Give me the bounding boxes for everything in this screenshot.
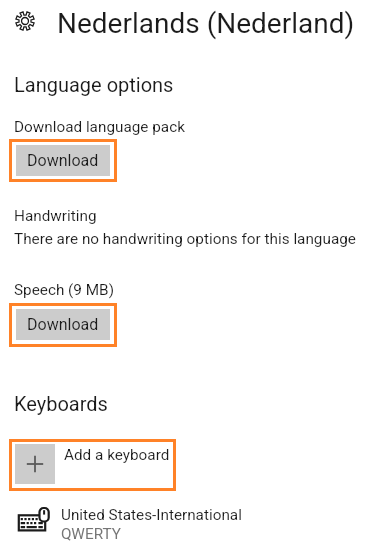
button[interactable]: Download speech pack [9, 303, 117, 347]
staticText: Language options [14, 73, 174, 96]
staticText: There are no handwriting options for thi… [14, 230, 356, 248]
other: Settings [15, 11, 35, 31]
staticText: Download [27, 315, 99, 334]
button[interactable]: Download language pack [9, 139, 117, 182]
staticText: Download language pack [14, 118, 185, 136]
staticText: QWERTY [61, 525, 121, 543]
staticText: Add a keyboard [64, 446, 170, 464]
staticText: United States-International [61, 506, 242, 524]
button[interactable]: United States-International [0, 498, 380, 551]
staticText: Nederlands (Nederland) [57, 7, 355, 40]
staticText: Keyboards [14, 392, 108, 415]
staticText: Speech (9 MB) [14, 281, 114, 299]
staticText: Download [27, 151, 99, 170]
staticText: Handwriting [14, 207, 97, 225]
button[interactable]: Add a keyboard [9, 439, 176, 491]
